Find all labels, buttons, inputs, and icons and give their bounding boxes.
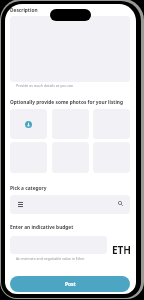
button[interactable]: Categories xyxy=(10,195,130,214)
staticText: Description xyxy=(10,7,38,14)
other: Categories xyxy=(18,202,23,207)
other: Search xyxy=(118,201,123,206)
staticText: Pick a category xyxy=(10,185,47,192)
staticText: Post xyxy=(65,281,76,288)
staticText: An estimate and negotiable value in Ethe… xyxy=(16,256,85,261)
staticText: Enter an indicative budget xyxy=(10,224,74,231)
staticText: Provide as much details as you can xyxy=(16,83,74,88)
staticText: ETH xyxy=(112,243,132,257)
button[interactable]: Add photo xyxy=(10,109,47,139)
button[interactable]: Post xyxy=(10,276,130,292)
button[interactable] xyxy=(10,16,130,82)
staticText: Optionally provide some photos for your … xyxy=(10,99,123,106)
